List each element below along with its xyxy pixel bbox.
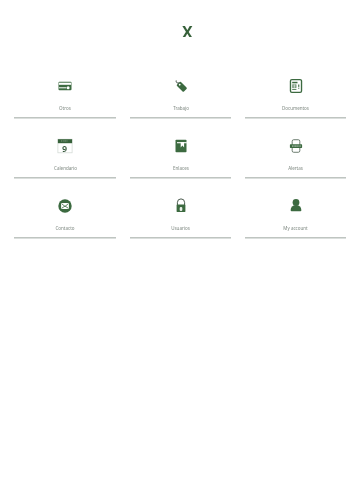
staticText: Contacto [55, 225, 75, 231]
staticText: Usuarios [171, 225, 190, 231]
staticText: X [182, 21, 193, 37]
staticText: Trabajo [173, 105, 189, 111]
button[interactable]: Calendario [14, 118, 116, 178]
button[interactable]: Documentos [245, 58, 346, 118]
button[interactable]: Alertas [245, 118, 346, 178]
button[interactable]: Home [0, 21, 360, 37]
button[interactable]: Enlaces [130, 118, 231, 178]
staticText: Enlaces [173, 165, 189, 171]
button[interactable]: Otros [14, 58, 116, 118]
staticText: 9 [62, 142, 68, 154]
button[interactable]: Usuarios [130, 178, 231, 238]
button[interactable]: Contacto [14, 178, 116, 238]
staticText: My account [283, 225, 308, 231]
staticText: Alertas [288, 165, 303, 171]
button[interactable]: Trabajo [130, 58, 231, 118]
staticText: Calendario [54, 165, 77, 171]
staticText: Otros [59, 105, 71, 111]
button[interactable]: My account [245, 178, 346, 238]
staticText: Documentos [282, 105, 309, 111]
